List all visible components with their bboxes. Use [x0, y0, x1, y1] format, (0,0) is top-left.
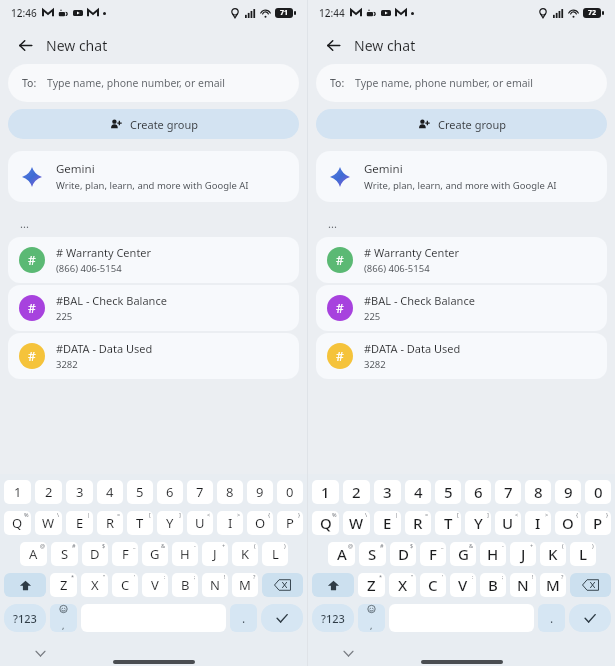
- button[interactable]: K: [232, 542, 258, 566]
- button[interactable]: #: [8, 333, 299, 379]
- button[interactable]: B: [480, 573, 506, 597]
- button[interactable]: Emoji: [50, 604, 77, 632]
- button[interactable]: #: [316, 237, 607, 283]
- button[interactable]: C: [420, 573, 446, 597]
- button[interactable]: 6: [465, 480, 491, 504]
- button[interactable]: Create group: [8, 109, 299, 139]
- button[interactable]: Create group: [316, 109, 607, 139]
- button[interactable]: V: [142, 573, 168, 597]
- button[interactable]: S: [359, 542, 386, 566]
- button[interactable]: D: [82, 542, 108, 566]
- button[interactable]: To:: [316, 64, 607, 102]
- button[interactable]: #: [8, 285, 299, 331]
- button[interactable]: X: [389, 573, 416, 597]
- button[interactable]: Gemini: [316, 151, 607, 202]
- button[interactable]: 1: [4, 480, 31, 504]
- button[interactable]: #: [8, 237, 299, 283]
- button[interactable]: A: [20, 542, 47, 566]
- button[interactable]: C: [112, 573, 138, 597]
- button[interactable]: I: [217, 511, 243, 535]
- button[interactable]: Q: [312, 511, 339, 535]
- button[interactable]: 7: [187, 480, 213, 504]
- button[interactable]: Z: [358, 573, 385, 597]
- button[interactable]: 0: [585, 480, 611, 504]
- button[interactable]: J: [510, 542, 536, 566]
- button[interactable]: Z: [50, 573, 77, 597]
- button[interactable]: .: [538, 604, 565, 632]
- button[interactable]: P: [277, 511, 303, 535]
- button[interactable]: L: [262, 542, 288, 566]
- button[interactable]: ?123: [4, 604, 46, 632]
- button[interactable]: 9: [555, 480, 581, 504]
- button[interactable]: ?123: [312, 604, 354, 632]
- button[interactable]: Back: [318, 30, 348, 60]
- button[interactable]: #: [316, 285, 607, 331]
- button[interactable]: Send: [569, 604, 611, 632]
- button[interactable]: K: [540, 542, 566, 566]
- button[interactable]: A: [328, 542, 355, 566]
- button[interactable]: 2: [343, 480, 370, 504]
- button[interactable]: P: [585, 511, 611, 535]
- button[interactable]: 3: [66, 480, 93, 504]
- button[interactable]: Y: [465, 511, 491, 535]
- button[interactable]: 9: [247, 480, 273, 504]
- button[interactable]: Hide keyboard: [340, 645, 356, 661]
- button[interactable]: 4: [97, 480, 123, 504]
- button[interactable]: To:: [8, 64, 299, 102]
- button[interactable]: Emoji: [358, 604, 385, 632]
- button[interactable]: G: [142, 542, 168, 566]
- button[interactable]: Y: [157, 511, 183, 535]
- button[interactable]: 5: [435, 480, 461, 504]
- button[interactable]: #: [316, 333, 607, 379]
- button[interactable]: 5: [127, 480, 153, 504]
- button[interactable]: M: [232, 573, 258, 597]
- button[interactable]: O: [247, 511, 273, 535]
- button[interactable]: 2: [35, 480, 62, 504]
- button[interactable]: N: [510, 573, 536, 597]
- button[interactable]: 7: [495, 480, 521, 504]
- button[interactable]: Backspace: [570, 573, 611, 597]
- button[interactable]: W: [343, 511, 370, 535]
- button[interactable]: 3: [374, 480, 401, 504]
- button[interactable]: .: [230, 604, 257, 632]
- button[interactable]: E: [374, 511, 401, 535]
- button[interactable]: T: [435, 511, 461, 535]
- button[interactable]: F: [420, 542, 446, 566]
- button[interactable]: Shift: [4, 573, 46, 597]
- button[interactable]: F: [112, 542, 138, 566]
- button[interactable]: J: [202, 542, 228, 566]
- button[interactable]: Q: [4, 511, 31, 535]
- button[interactable]: I: [525, 511, 551, 535]
- button[interactable]: Hide keyboard: [32, 645, 48, 661]
- button[interactable]: Shift: [312, 573, 354, 597]
- button[interactable]: L: [570, 542, 596, 566]
- button[interactable]: W: [35, 511, 62, 535]
- button[interactable]: 4: [405, 480, 431, 504]
- button[interactable]: Send: [261, 604, 303, 632]
- button[interactable]: H: [480, 542, 506, 566]
- button[interactable]: D: [390, 542, 416, 566]
- button[interactable]: X: [81, 573, 108, 597]
- button[interactable]: N: [202, 573, 228, 597]
- button[interactable]: Back: [10, 30, 40, 60]
- button[interactable]: E: [66, 511, 93, 535]
- button[interactable]: 1: [312, 480, 339, 504]
- button[interactable]: 6: [157, 480, 183, 504]
- button[interactable]: T: [127, 511, 153, 535]
- button[interactable]: 8: [217, 480, 243, 504]
- button[interactable]: V: [450, 573, 476, 597]
- button[interactable]: H: [172, 542, 198, 566]
- button[interactable]: Gemini: [8, 151, 299, 202]
- button[interactable]: M: [540, 573, 566, 597]
- button[interactable]: 0: [277, 480, 303, 504]
- button[interactable]: G: [450, 542, 476, 566]
- button[interactable]: B: [172, 573, 198, 597]
- button[interactable]: U: [187, 511, 213, 535]
- button[interactable]: S: [51, 542, 78, 566]
- button[interactable]: R: [97, 511, 123, 535]
- button[interactable]: Backspace: [262, 573, 303, 597]
- button[interactable]: 8: [525, 480, 551, 504]
- button[interactable]: U: [495, 511, 521, 535]
